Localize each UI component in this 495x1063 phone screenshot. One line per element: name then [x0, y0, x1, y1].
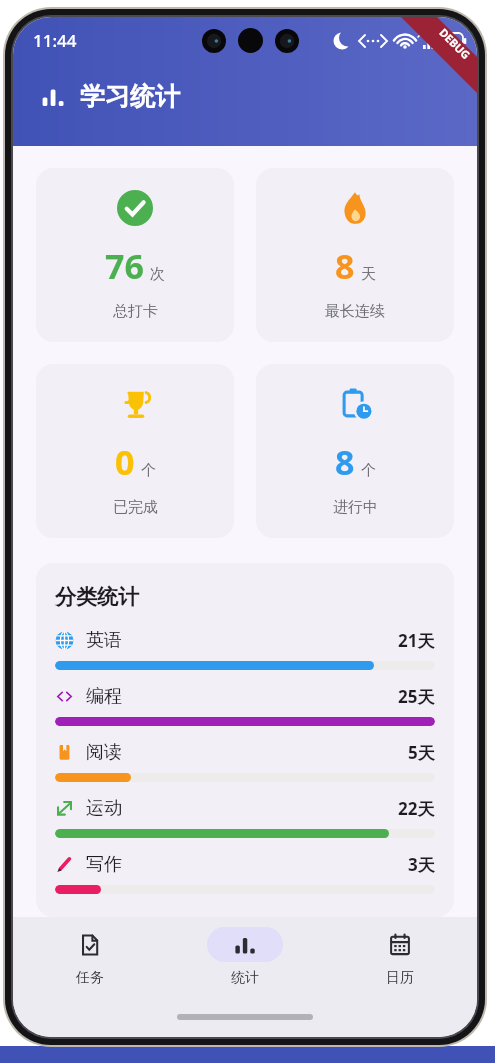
- staticText: 3天: [408, 853, 435, 876]
- staticText: 最长连续: [325, 302, 385, 321]
- staticText: 0: [115, 439, 135, 485]
- staticText: 21天: [398, 629, 435, 652]
- staticText: 任务: [76, 969, 104, 987]
- button[interactable]: 运动: [55, 797, 435, 838]
- button[interactable]: 8: [256, 168, 454, 342]
- button[interactable]: 编程: [55, 685, 435, 726]
- button[interactable]: 日历: [322, 917, 477, 997]
- staticText: 进行中: [333, 498, 378, 517]
- staticText: 写作: [86, 853, 122, 876]
- staticText: 已完成: [113, 498, 158, 517]
- staticText: 编程: [86, 685, 122, 708]
- staticText: 8: [335, 439, 355, 485]
- staticText: 运动: [86, 797, 122, 820]
- staticText: 76: [105, 243, 144, 289]
- button[interactable]: 英语: [55, 629, 435, 670]
- staticText: 英语: [86, 629, 122, 652]
- staticText: 5天: [408, 741, 435, 764]
- button[interactable]: 任务: [13, 917, 167, 997]
- button[interactable]: 写作: [55, 853, 435, 894]
- staticText: 25天: [398, 685, 435, 708]
- staticText: 天: [361, 265, 376, 284]
- button[interactable]: 76: [36, 168, 234, 342]
- staticText: 总打卡: [113, 302, 158, 321]
- staticText: 统计: [231, 969, 259, 987]
- staticText: 个: [141, 461, 156, 480]
- staticText: 个: [361, 461, 376, 480]
- staticText: DEBUG: [436, 25, 474, 62]
- button[interactable]: 0: [36, 364, 234, 538]
- staticText: 阅读: [86, 741, 122, 764]
- button[interactable]: 统计: [167, 917, 322, 997]
- button[interactable]: 8: [256, 364, 454, 538]
- staticText: 学习统计: [80, 81, 180, 112]
- staticText: 22天: [398, 797, 435, 820]
- staticText: 次: [150, 265, 165, 284]
- button[interactable]: 阅读: [55, 741, 435, 782]
- staticText: 8: [335, 243, 355, 289]
- staticText: 11:44: [33, 29, 77, 52]
- staticText: 分类统计: [55, 584, 139, 610]
- staticText: 日历: [386, 969, 414, 987]
